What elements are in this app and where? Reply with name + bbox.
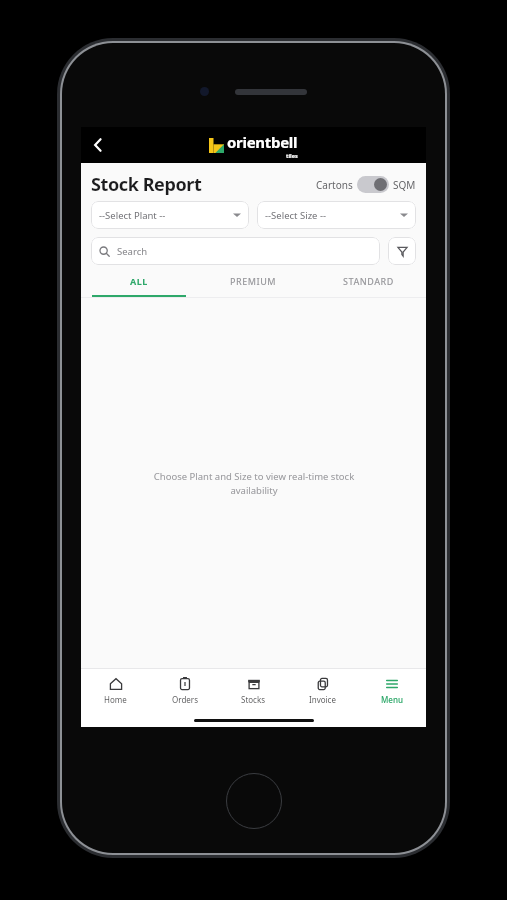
button[interactable]: Orders — [150, 669, 219, 713]
staticText: --Select Size -- — [265, 209, 327, 222]
staticText: --Select Plant -- — [99, 209, 166, 222]
staticText: Orders — [172, 694, 198, 705]
button[interactable]: Search — [91, 237, 380, 265]
staticText: SQM — [393, 178, 416, 192]
staticText: Menu — [381, 694, 403, 705]
staticText: Cartons — [316, 178, 353, 192]
button[interactable]: PREMIUM — [196, 275, 311, 297]
staticText: STANDARD — [343, 275, 394, 287]
staticText: tiles — [286, 152, 298, 159]
button[interactable]: Filter — [388, 237, 416, 265]
button[interactable]: Back — [81, 128, 115, 162]
staticText: Home — [104, 694, 127, 705]
button[interactable]: Invoice — [288, 669, 357, 713]
button[interactable]: --Select Plant -- — [91, 201, 249, 229]
staticText: Invoice — [309, 694, 336, 705]
staticText: orientbell — [227, 132, 298, 152]
button[interactable]: Cartons or SQM toggle — [357, 176, 389, 193]
button[interactable]: STANDARD — [311, 275, 426, 297]
staticText: PREMIUM — [230, 275, 277, 287]
button[interactable]: Home — [81, 669, 150, 713]
button[interactable]: Menu — [357, 669, 426, 713]
staticText: Choose Plant and Size to view real-time … — [139, 470, 369, 497]
button[interactable]: Stocks — [219, 669, 288, 713]
staticText: Stock Report — [91, 172, 202, 197]
staticText: Search — [117, 245, 148, 258]
button[interactable]: --Select Size -- — [257, 201, 416, 229]
staticText: Stocks — [241, 694, 266, 705]
staticText: ALL — [130, 275, 148, 287]
button[interactable]: ALL — [81, 275, 196, 297]
